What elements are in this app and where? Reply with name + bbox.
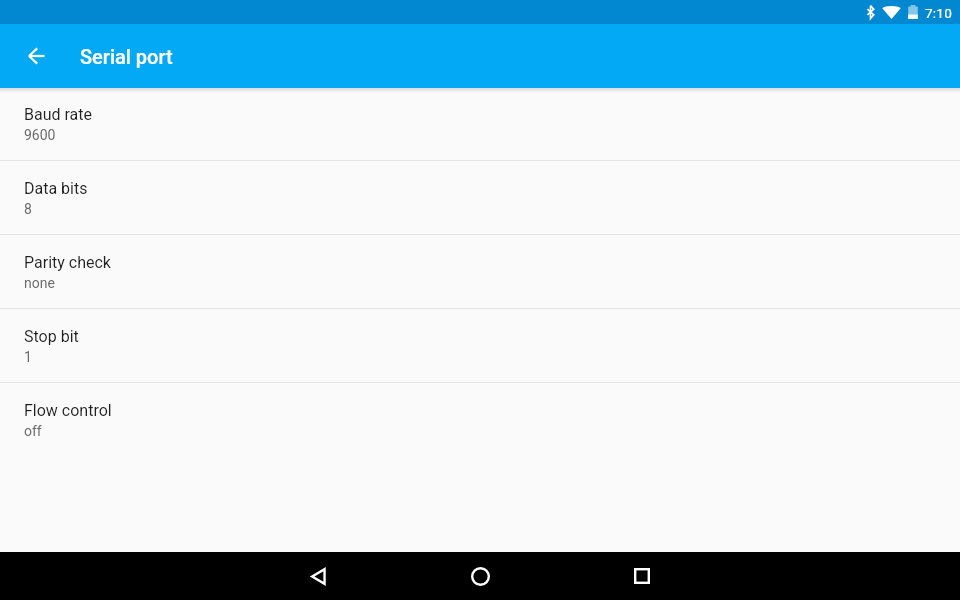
staticText: Flow control xyxy=(24,401,112,420)
button[interactable]: Baud rate xyxy=(0,88,960,160)
staticText: off xyxy=(24,423,42,439)
staticText: 1 xyxy=(24,349,32,365)
staticText: Data bits xyxy=(24,179,88,198)
button[interactable]: Stop bit xyxy=(0,309,960,382)
button[interactable]: Back xyxy=(294,552,342,600)
button[interactable]: Flow control xyxy=(0,383,960,456)
staticText: none xyxy=(24,275,55,291)
staticText: Parity check xyxy=(24,253,111,272)
button[interactable]: Home xyxy=(456,552,504,600)
button[interactable]: Data bits xyxy=(0,161,960,234)
staticText: Baud rate xyxy=(24,105,93,124)
staticText: Stop bit xyxy=(24,327,79,346)
staticText: 9600 xyxy=(24,127,56,143)
staticText: Serial port xyxy=(80,45,173,68)
button[interactable]: Navigate up xyxy=(12,32,60,80)
button[interactable]: Recent apps xyxy=(618,552,666,600)
staticText: 7:10 xyxy=(925,5,953,21)
staticText: 8 xyxy=(24,201,32,217)
button[interactable]: Parity check xyxy=(0,235,960,308)
